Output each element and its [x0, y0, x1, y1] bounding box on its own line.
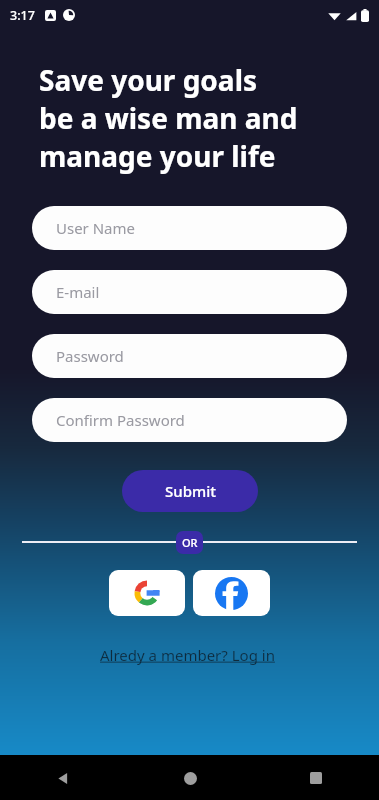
button[interactable]: Alredy a member? Log in [96, 641, 283, 669]
staticText: User Name [56, 218, 136, 238]
button[interactable]: Recent apps [294, 756, 338, 800]
staticText: 3:17 [10, 7, 35, 24]
staticText: E-mail [56, 282, 100, 302]
button[interactable]: Home [168, 756, 212, 800]
staticText: Password [56, 346, 124, 366]
button[interactable]: Submit [122, 470, 258, 512]
button[interactable]: Confirm Password [32, 398, 347, 442]
staticText: Alredy a member? Log in [100, 645, 279, 665]
button[interactable]: Back [41, 756, 85, 800]
button[interactable]: User Name [32, 206, 347, 250]
button[interactable]: Password [32, 334, 347, 378]
staticText: OR [182, 535, 198, 550]
staticText: Submit [165, 481, 216, 501]
button[interactable]: Sign in with Google [109, 570, 185, 616]
staticText: Save your goals be a wise man and manage… [39, 61, 298, 175]
staticText: Confirm Password [56, 410, 185, 430]
button[interactable]: E-mail [32, 270, 347, 314]
button[interactable]: Sign in with Facebook [193, 570, 270, 616]
